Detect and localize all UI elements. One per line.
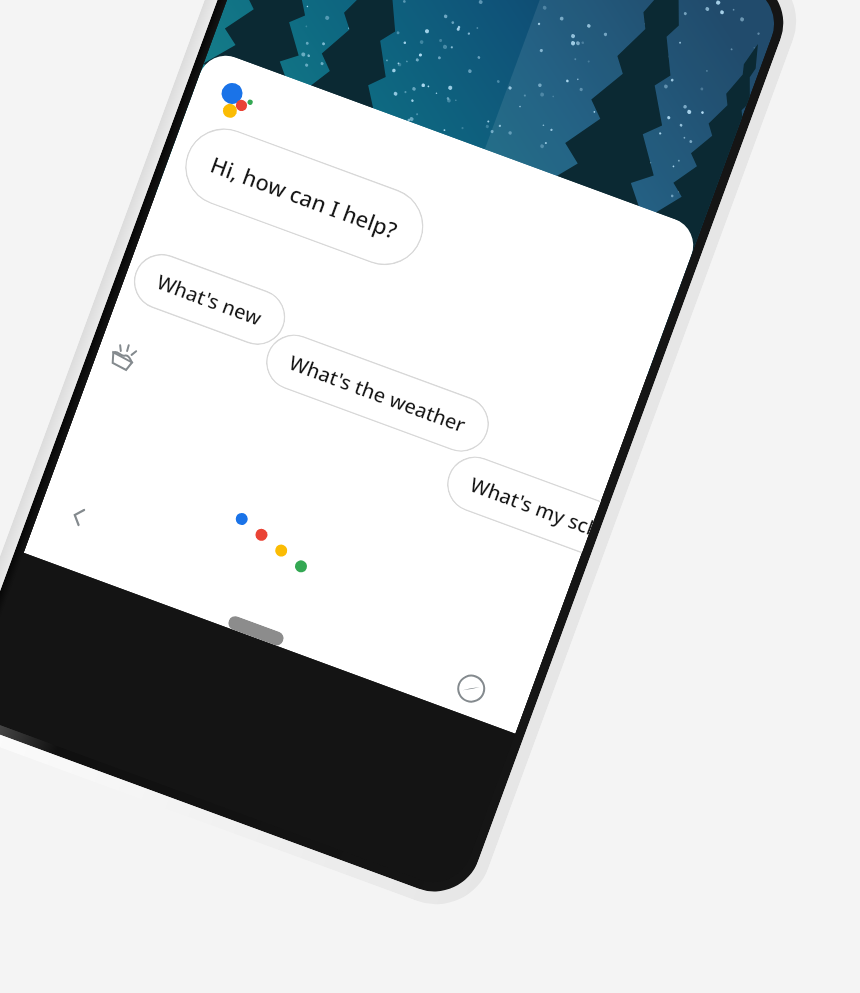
button[interactable]: What's new — [126, 246, 293, 353]
staticText: Hi, how can I help? — [207, 149, 402, 245]
button[interactable]: Home — [226, 614, 286, 647]
button[interactable]: What's my schedule — [439, 448, 601, 553]
button[interactable]: Explore — [447, 664, 496, 713]
button[interactable]: What's the weather — [258, 326, 497, 460]
staticText: What's the weather — [285, 349, 469, 438]
button[interactable]: Back — [54, 492, 103, 541]
staticText: What's new — [153, 268, 266, 331]
button[interactable]: Media — [96, 327, 152, 383]
button[interactable]: Assistant greeting — [174, 117, 435, 276]
staticText: What's my schedule — [466, 471, 596, 540]
